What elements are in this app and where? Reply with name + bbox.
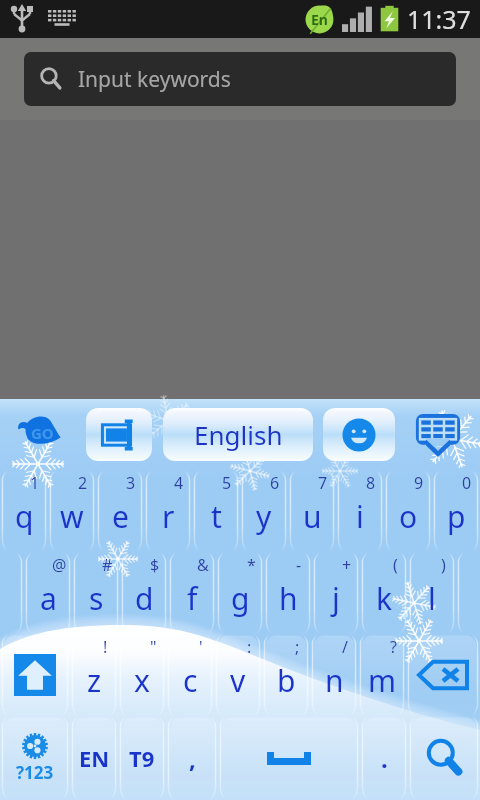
staticText: u [303,496,322,537]
button[interactable]: @ [24,552,72,634]
staticText: English [194,417,283,452]
staticText: ' [199,636,203,658]
staticText: ) [441,554,446,576]
button[interactable]: . [360,716,408,800]
staticText: # [102,554,113,576]
staticText: 0 [462,472,472,494]
staticText: 11:37 [407,2,471,36]
staticText: : [247,636,252,658]
button[interactable]: $ [120,552,168,634]
staticText: ( [393,554,398,576]
staticText: 4 [174,472,184,494]
staticText: h [279,578,298,619]
staticText: , [189,742,196,775]
button[interactable]: Space [218,716,360,800]
button[interactable]: 0 [432,470,480,552]
button[interactable]: English [163,408,313,461]
button[interactable]: 8 [336,470,384,552]
button[interactable]: Shift [0,634,70,716]
staticText: ; [295,636,300,658]
button[interactable]: 5 [192,470,240,552]
staticText: + [342,554,352,576]
button[interactable]: Input keywords [24,52,456,106]
button[interactable]: # [72,552,120,634]
staticText: n [325,660,344,701]
button[interactable]: Symbols [0,716,70,800]
staticText: z [87,660,102,701]
staticText: 2 [78,472,88,494]
staticText: * [247,554,256,576]
staticText: v [230,660,246,701]
staticText: GO [31,423,54,443]
button[interactable]: / [310,634,358,716]
button[interactable]: Emoji [323,408,395,461]
staticText: q [15,496,34,537]
staticText: i [356,496,364,537]
button[interactable]: + [312,552,360,634]
staticText: 9 [414,472,424,494]
button[interactable]: , [166,716,218,800]
staticText: l [428,578,436,619]
staticText: j [332,578,340,619]
button[interactable]: 1 [0,470,48,552]
staticText: 7 [318,472,328,494]
staticText: - [296,554,302,576]
staticText: b [277,660,296,701]
staticText: o [399,496,418,537]
staticText: ?123 [16,761,54,784]
staticText: En [311,10,328,29]
button[interactable]: 3 [96,470,144,552]
button[interactable]: 6 [240,470,288,552]
button[interactable]: T9 [118,716,166,800]
staticText: r [162,496,175,537]
staticText: & [197,554,209,576]
staticText: 3 [126,472,136,494]
staticText: ! [103,636,108,658]
staticText: f [187,578,198,619]
staticText: w [60,496,84,537]
staticText: Input keywords [78,65,231,94]
button[interactable]: * [216,552,264,634]
button[interactable]: Search [408,716,480,800]
button[interactable]: 2 [48,470,96,552]
button[interactable]: 7 [288,470,336,552]
staticText: EN [79,743,110,773]
staticText: s [89,578,104,619]
staticText: m [368,660,397,701]
button[interactable]: 4 [144,470,192,552]
staticText: d [135,578,154,619]
button[interactable]: EN [70,716,118,800]
staticText: 6 [270,472,280,494]
staticText: / [342,636,348,658]
button[interactable]: - [264,552,312,634]
staticText: g [231,578,250,619]
staticText: $ [150,554,160,576]
button[interactable]: ' [166,634,214,716]
button[interactable]: ! [70,634,118,716]
staticText: T9 [129,743,155,773]
staticText: c [183,660,198,701]
staticText: @ [52,554,67,576]
button[interactable]: " [118,634,166,716]
staticText: t [211,496,222,537]
staticText: y [256,496,272,537]
button[interactable]: GO Keyboard [0,399,86,470]
staticText: " [150,636,157,658]
button[interactable]: & [168,552,216,634]
staticText: 8 [366,472,376,494]
staticText: e [112,496,129,537]
button[interactable]: ) [408,552,456,634]
button[interactable]: Hide keyboard [395,399,480,470]
button[interactable]: : [214,634,262,716]
button[interactable]: Delete [406,634,480,716]
button[interactable]: Theme [86,408,152,461]
staticText: a [40,578,57,619]
button[interactable]: ? [358,634,406,716]
button[interactable]: ( [360,552,408,634]
button[interactable]: 9 [384,470,432,552]
staticText: p [447,496,466,537]
staticText: ? [390,636,397,658]
staticText: 1 [30,472,40,494]
staticText: x [134,660,150,701]
button[interactable]: ; [262,634,310,716]
